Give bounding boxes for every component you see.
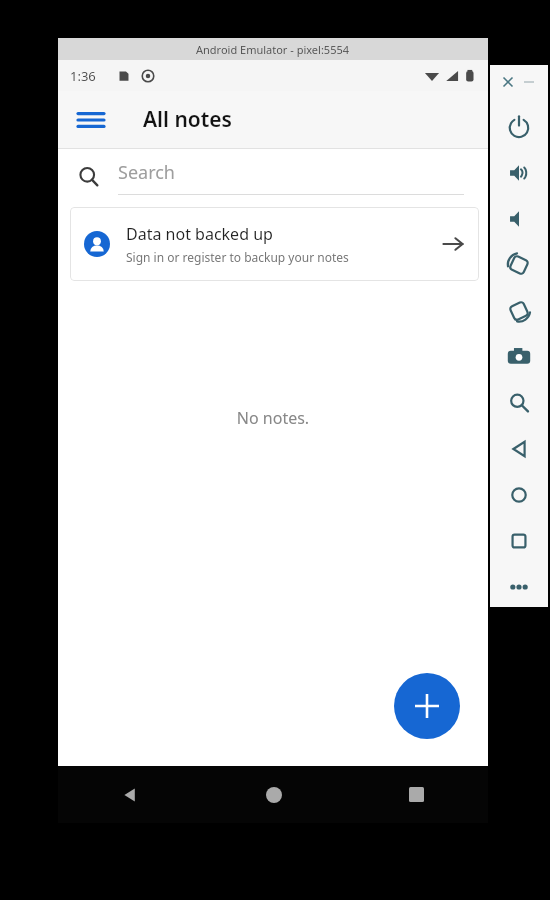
staticText: No notes. (58, 407, 488, 429)
button[interactable]: Emulator control 10 (505, 573, 533, 601)
button[interactable]: Recent apps (345, 766, 488, 823)
staticText: All notes (143, 105, 232, 134)
button[interactable]: Back (58, 766, 202, 823)
button[interactable]: Emulator control 3 (505, 251, 533, 279)
button[interactable]: Open navigation menu (74, 103, 108, 137)
button[interactable]: Home (202, 766, 345, 823)
button[interactable]: Emulator control 8 (505, 481, 533, 509)
button[interactable]: Data not backed up (70, 207, 479, 281)
staticText: Sign in or register to backup your notes (126, 249, 349, 265)
button[interactable]: Emulator control 9 (505, 527, 533, 555)
button[interactable]: Emulator control 5 (505, 343, 533, 371)
button[interactable]: Emulator control 2 (505, 205, 533, 233)
button[interactable]: Search (72, 160, 106, 194)
button[interactable]: Emulator control 1 (505, 159, 533, 187)
button[interactable]: Emulator control 4 (505, 297, 533, 325)
staticText: Search (118, 160, 175, 185)
button[interactable]: Emulator control 6 (505, 389, 533, 417)
staticText: Android Emulator - pixel:5554 (196, 42, 350, 57)
staticText: 1:36 (70, 67, 96, 85)
button[interactable]: Emulator control 0 (505, 113, 533, 141)
staticText: Data not backed up (126, 223, 273, 245)
button[interactable]: Add note (394, 673, 460, 739)
button[interactable]: Emulator control 7 (505, 435, 533, 463)
